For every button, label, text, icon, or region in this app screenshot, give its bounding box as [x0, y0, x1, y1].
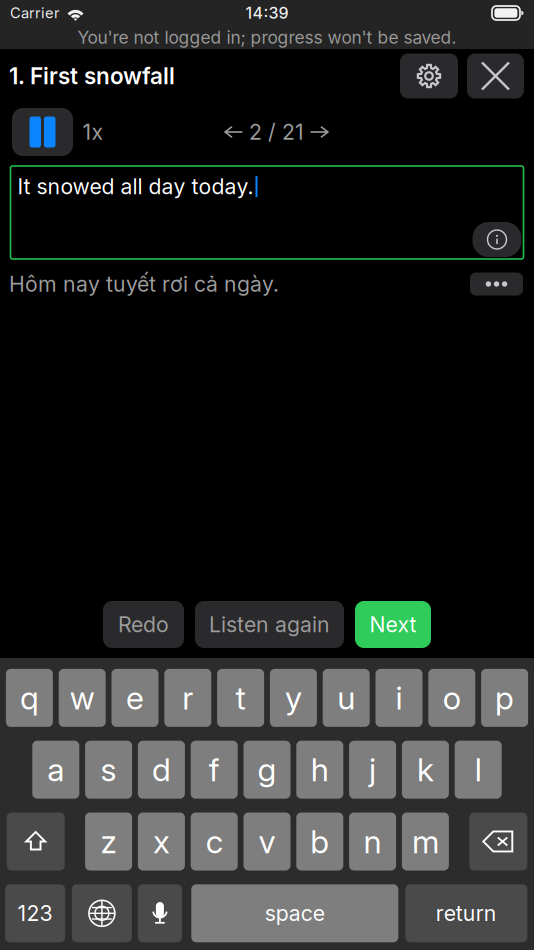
button[interactable]: b [296, 812, 343, 870]
staticText: v [258, 823, 275, 860]
button[interactable]: e [111, 669, 158, 727]
button[interactable]: Pause [12, 108, 73, 156]
button[interactable]: a [32, 741, 79, 799]
button[interactable]: p [481, 669, 528, 727]
button[interactable]: space [191, 884, 398, 942]
staticText: n [364, 823, 382, 860]
button[interactable]: Redo [103, 601, 184, 648]
staticText: z [101, 823, 117, 860]
button[interactable]: Listen again [195, 601, 344, 648]
button[interactable]: y [270, 669, 317, 727]
button[interactable]: w [59, 669, 106, 727]
button[interactable]: Previous sentence [224, 122, 243, 141]
staticText: b [310, 823, 329, 860]
button[interactable]: n [349, 812, 396, 870]
button[interactable]: x [138, 812, 185, 870]
staticText: It snowed all day today. [17, 174, 253, 199]
button[interactable]: More options [470, 272, 523, 295]
staticText: You're not logged in; progress won't be … [77, 27, 456, 48]
staticText: a [47, 751, 64, 789]
staticText: w [70, 679, 95, 717]
button[interactable]: Next sentence [310, 122, 329, 141]
staticText: Next [369, 612, 416, 637]
button[interactable]: return [405, 884, 527, 942]
staticText: Redo [118, 612, 169, 637]
button[interactable]: r [164, 669, 211, 727]
staticText: Hôm nay tuyết rơi cả ngày. [9, 271, 279, 297]
staticText: 123 [18, 901, 53, 926]
button[interactable]: 1x [76, 115, 110, 149]
button[interactable]: Settings [400, 53, 458, 98]
staticText: l [475, 751, 482, 789]
button[interactable]: i [375, 669, 422, 727]
button[interactable]: g [243, 741, 290, 799]
button[interactable]: u [323, 669, 370, 727]
staticText: m [412, 823, 439, 860]
button[interactable]: Shift [7, 812, 65, 870]
button[interactable]: s [85, 741, 132, 799]
button[interactable]: Delete [469, 812, 527, 870]
staticText: q [20, 679, 39, 717]
button[interactable]: k [402, 741, 449, 799]
button[interactable]: Next [355, 601, 431, 648]
staticText: 1. First snowfall [9, 63, 175, 89]
staticText: 1x [82, 119, 103, 145]
staticText: u [337, 679, 355, 717]
button[interactable]: d [138, 741, 185, 799]
button[interactable]: l [455, 741, 502, 799]
staticText: j [369, 751, 376, 789]
staticText: p [495, 679, 514, 717]
staticText: space [265, 901, 325, 926]
staticText: i [395, 679, 402, 717]
staticText: t [236, 679, 246, 717]
button[interactable]: v [243, 812, 290, 870]
button[interactable]: 123 [5, 884, 65, 942]
staticText: o [443, 679, 461, 717]
staticText: d [152, 751, 171, 789]
button[interactable]: Next keyboard [72, 884, 132, 942]
button[interactable]: t [217, 669, 264, 727]
staticText: 14:39 [245, 4, 288, 22]
staticText: e [126, 679, 144, 717]
staticText: Carrier [10, 4, 60, 22]
staticText: x [153, 823, 170, 860]
staticText: k [417, 751, 434, 789]
staticText: c [206, 823, 223, 860]
button[interactable]: o [428, 669, 475, 727]
button[interactable]: c [191, 812, 238, 870]
staticText: Listen again [209, 612, 330, 637]
staticText: h [311, 751, 329, 789]
button[interactable]: m [402, 812, 449, 870]
staticText: g [257, 751, 276, 789]
button[interactable]: z [85, 812, 132, 870]
button[interactable]: Dictate [138, 884, 182, 942]
button[interactable]: q [6, 669, 53, 727]
staticText: 2 / 21 [249, 119, 304, 145]
staticText: return [436, 901, 497, 926]
button[interactable]: j [349, 741, 396, 799]
button[interactable]: Close [467, 53, 524, 98]
button[interactable]: f [191, 741, 238, 799]
staticText: r [182, 679, 193, 717]
button[interactable]: Info [472, 222, 521, 257]
button[interactable]: h [296, 741, 343, 799]
staticText: s [101, 751, 117, 789]
staticText: f [209, 751, 220, 789]
staticText: y [285, 679, 302, 717]
